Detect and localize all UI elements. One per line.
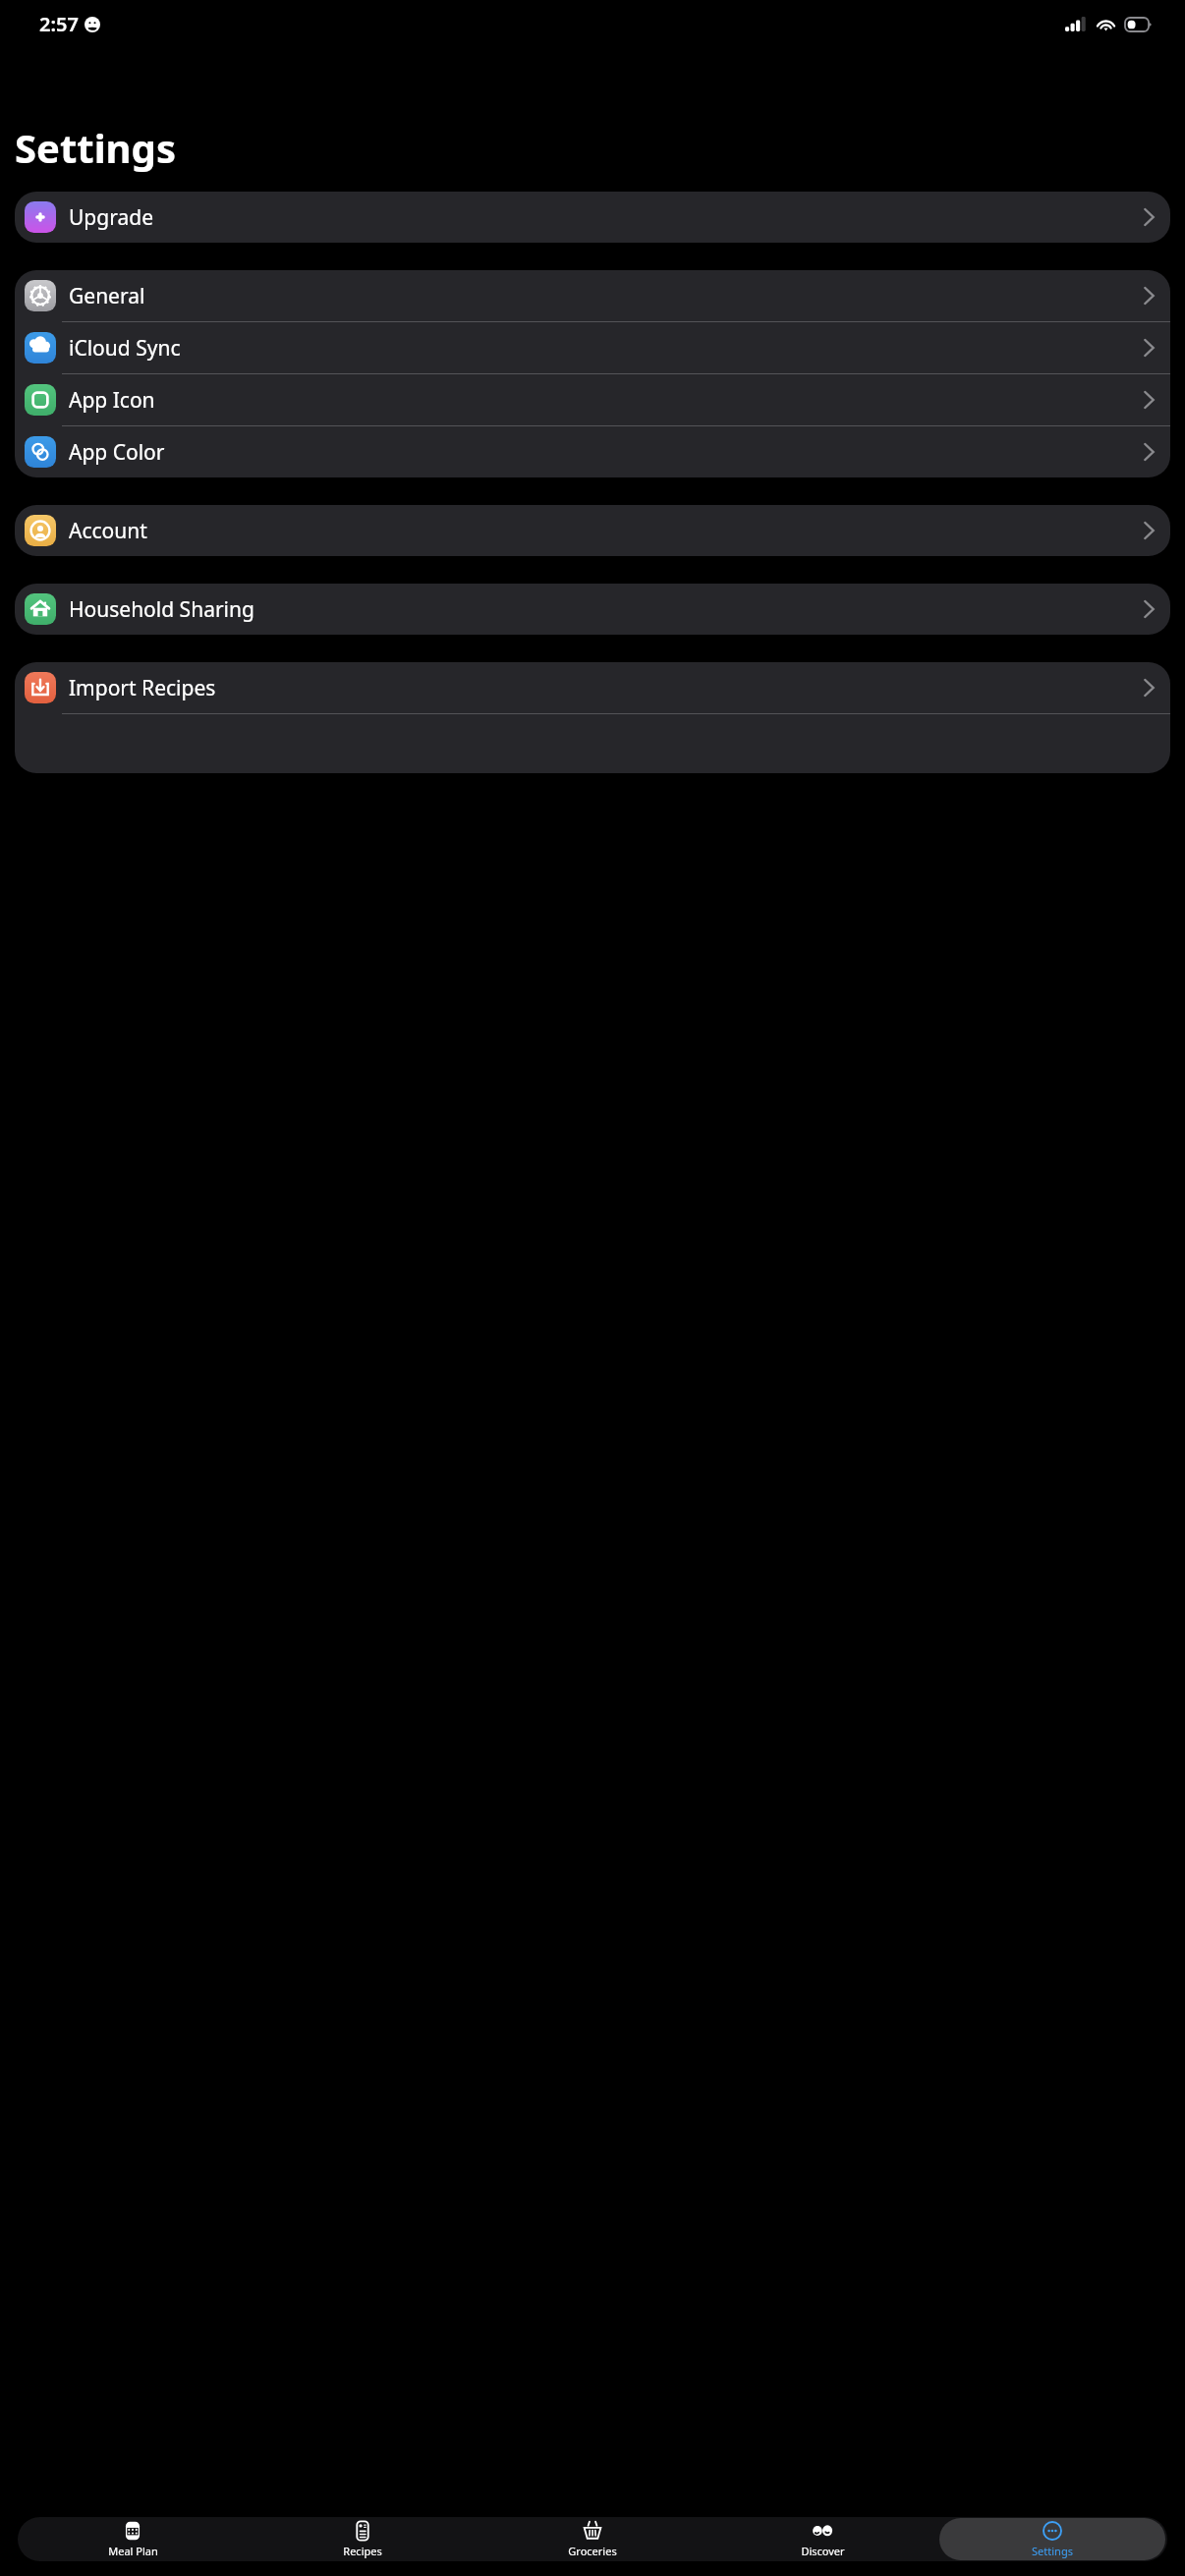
staticText: Discover [801,2544,845,2558]
button[interactable]: Account [15,505,1170,556]
staticText: Settings [1032,2544,1073,2558]
button[interactable]: General [15,270,1170,321]
staticText: iCloud Sync [69,334,181,363]
button[interactable]: Household Sharing [15,584,1170,635]
button[interactable]: App Icon [15,374,1170,425]
button[interactable]: Recipes [250,2518,476,2560]
staticText: Meal Plan [108,2544,158,2558]
button[interactable]: Settings [939,2518,1165,2560]
staticText: Groceries [568,2544,617,2558]
button[interactable]: App Color [15,426,1170,477]
button[interactable]: iCloud Sync [15,322,1170,373]
staticText: Import Recipes [69,674,216,702]
staticText: Upgrade [69,203,153,232]
button[interactable]: Upgrade [15,192,1170,243]
button[interactable]: Import Recipes [15,662,1170,713]
button[interactable]: Meal Plan [20,2518,246,2560]
staticText: Settings [15,121,176,174]
staticText: Account [69,517,147,545]
staticText: App Icon [69,386,155,415]
button[interactable]: Discover [709,2518,935,2560]
staticText: General [69,282,145,310]
staticText: 2:57 [39,11,79,37]
staticText: Recipes [343,2544,382,2558]
staticText: App Color [69,438,165,467]
button[interactable]: Groceries [480,2518,705,2560]
staticText: Household Sharing [69,595,254,624]
